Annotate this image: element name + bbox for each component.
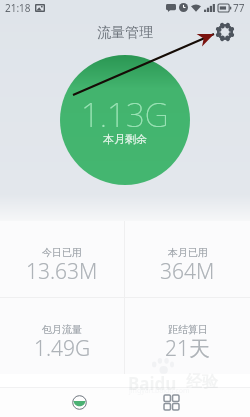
staticText: 今日已用	[42, 246, 82, 259]
staticText: 77	[233, 1, 245, 15]
staticText: 经验	[186, 372, 218, 392]
button[interactable]: 距结算日	[125, 298, 250, 374]
staticText: 21:18	[5, 1, 31, 15]
button[interactable]: 本月已用	[125, 221, 250, 297]
staticText: 本月已用	[168, 246, 208, 259]
staticText: 13.63M	[26, 257, 98, 286]
staticText: 本月剩余	[103, 132, 147, 146]
staticText: 21天	[165, 334, 210, 363]
staticText: 1.13G	[81, 92, 169, 137]
button[interactable]: 包月流量	[0, 298, 124, 374]
staticText: jingyan.baidu.com	[129, 386, 190, 396]
staticText: 包月流量	[42, 323, 82, 336]
staticText: 流量管理	[97, 24, 153, 42]
button[interactable]: Settings	[210, 17, 240, 47]
button[interactable]: Apps	[156, 388, 186, 417]
button[interactable]: Traffic monitor	[64, 388, 94, 417]
staticText: 364M	[160, 257, 215, 286]
staticText: 距结算日	[168, 323, 208, 336]
staticText: 1.49G	[34, 334, 91, 363]
button[interactable]: 今日已用	[0, 221, 124, 297]
button[interactable]: 1.13G	[60, 55, 190, 185]
staticText: Baidu	[128, 372, 177, 395]
